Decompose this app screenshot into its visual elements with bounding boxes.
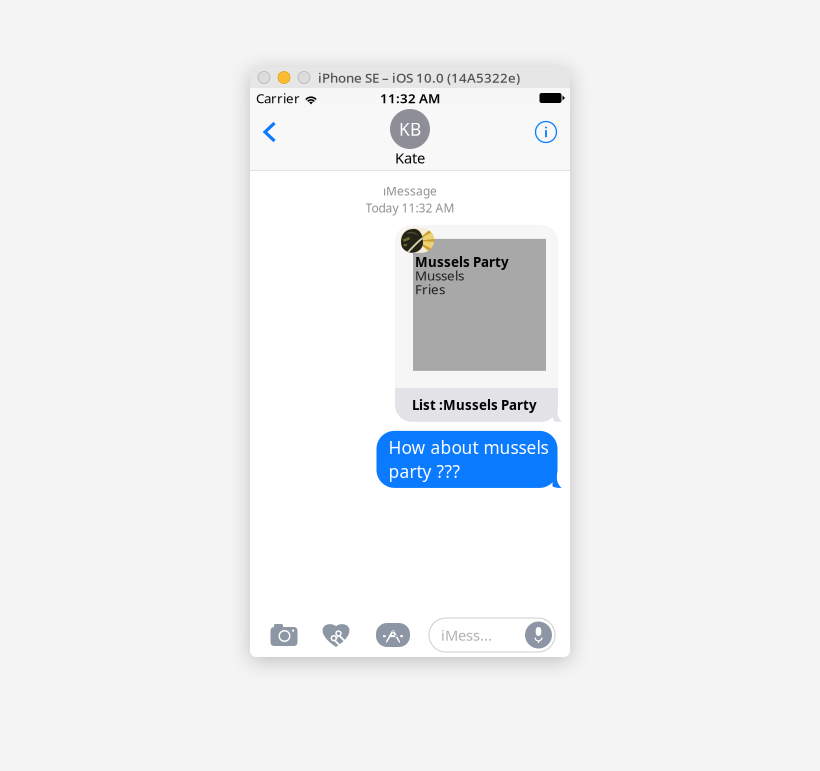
button[interactable]: Back xyxy=(255,110,284,153)
button[interactable]: iMessage text field xyxy=(429,618,555,652)
staticText: 11:32 AM xyxy=(380,89,440,107)
button[interactable]: Details xyxy=(527,110,565,154)
staticText: Fries xyxy=(415,280,445,298)
staticText: Today 11:32 AM xyxy=(365,200,454,216)
staticText: iMess... xyxy=(441,625,492,645)
staticText: List :Mussels Party xyxy=(412,396,537,414)
staticText: Carrier xyxy=(256,89,300,107)
staticText: How about mussels xyxy=(388,436,548,459)
staticText: Mussels Party xyxy=(415,253,509,271)
staticText: iPhone SE – iOS 10.0 (14A5322e) xyxy=(318,69,520,86)
button[interactable]: iMessage Apps xyxy=(376,623,410,647)
staticText: KB xyxy=(399,117,421,140)
button[interactable]: Digital Touch xyxy=(322,622,350,647)
button[interactable]: Camera xyxy=(270,624,298,646)
staticText: iMessage xyxy=(383,183,437,199)
staticText: party ??? xyxy=(388,460,460,483)
staticText: Mussels xyxy=(415,267,464,284)
staticText: Kate xyxy=(395,148,425,167)
